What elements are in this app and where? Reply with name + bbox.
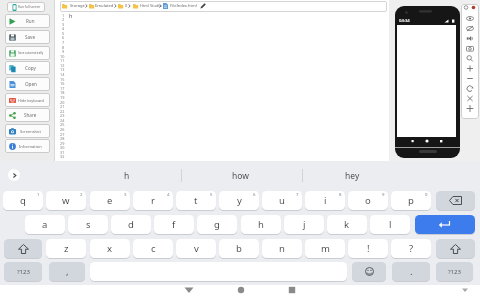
- button[interactable]: [8, 169, 20, 181]
- staticText: 31: [60, 150, 65, 155]
- button[interactable]: m: [305, 239, 345, 258]
- button[interactable]: Run: [5, 14, 50, 28]
- button[interactable]: [466, 85, 474, 92]
- button[interactable]: u: [262, 191, 302, 210]
- button[interactable]: n: [262, 239, 302, 258]
- button[interactable]: .: [392, 262, 430, 281]
- button[interactable]: g: [197, 215, 237, 234]
- button[interactable]: [4, 239, 42, 258]
- button[interactable]: Save: [5, 30, 50, 44]
- staticText: ?123: [448, 268, 461, 276]
- staticText: o: [365, 194, 371, 207]
- staticText: Information: [19, 144, 42, 149]
- button[interactable]: s: [68, 215, 108, 234]
- staticText: 29: [60, 141, 65, 146]
- staticText: 22: [60, 109, 65, 114]
- button[interactable]: [460, 287, 470, 294]
- button[interactable]: [466, 35, 474, 42]
- staticText: 32: [60, 154, 65, 159]
- button[interactable]: [415, 215, 475, 234]
- staticText: FileIndex.html: [170, 3, 197, 8]
- button[interactable]: v: [176, 239, 216, 258]
- staticText: .: [410, 265, 413, 278]
- button[interactable]: l: [370, 215, 410, 234]
- button[interactable]: [436, 191, 475, 210]
- button[interactable]: t: [176, 191, 216, 210]
- button[interactable]: h: [97, 163, 157, 189]
- button[interactable]: [60, 1, 387, 12]
- staticText: b: [236, 242, 242, 255]
- staticText: 16: [60, 81, 65, 86]
- button[interactable]: [466, 45, 474, 52]
- button[interactable]: [466, 65, 474, 72]
- button[interactable]: [466, 15, 474, 22]
- staticText: Storage: [70, 3, 85, 9]
- button[interactable]: p: [391, 191, 431, 210]
- button[interactable]: Screenshot: [5, 124, 50, 138]
- button[interactable]: a: [25, 215, 65, 234]
- button[interactable]: j: [284, 215, 324, 234]
- staticText: 04:34: [399, 18, 410, 24]
- button[interactable]: w: [46, 191, 86, 210]
- staticText: 11: [60, 58, 65, 63]
- button[interactable]: f: [154, 215, 194, 234]
- button[interactable]: [466, 25, 474, 32]
- button[interactable]: [436, 239, 475, 258]
- button[interactable]: hey: [322, 163, 382, 189]
- button[interactable]: [352, 262, 386, 281]
- button[interactable]: Share: [5, 108, 50, 122]
- button[interactable]: y: [219, 191, 259, 210]
- button[interactable]: ?123: [4, 262, 42, 281]
- button[interactable]: b: [219, 239, 259, 258]
- button[interactable]: [286, 286, 298, 294]
- button[interactable]: !: [348, 239, 388, 258]
- button[interactable]: Open: [5, 77, 50, 91]
- button[interactable]: Hide keyboard: [5, 93, 50, 107]
- staticText: y: [237, 194, 242, 207]
- button[interactable]: e: [90, 191, 130, 210]
- staticText: e: [107, 194, 113, 207]
- staticText: 10: [60, 54, 65, 59]
- button[interactable]: [463, 5, 477, 10]
- staticText: 7: [296, 191, 299, 197]
- staticText: 8: [339, 191, 342, 197]
- button[interactable]: k: [327, 215, 367, 234]
- staticText: ?123: [17, 268, 30, 276]
- button[interactable]: Save automatically: [5, 46, 50, 60]
- staticText: 1: [62, 13, 65, 18]
- button[interactable]: ?123: [436, 262, 473, 281]
- button[interactable]: d: [111, 215, 151, 234]
- button[interactable]: [466, 75, 474, 82]
- button[interactable]: Run full screen: [7, 2, 45, 12]
- button[interactable]: q: [3, 191, 43, 210]
- staticText: h: [69, 12, 73, 19]
- button[interactable]: ?: [391, 239, 431, 258]
- button[interactable]: [235, 286, 247, 294]
- button[interactable]: [466, 95, 474, 102]
- button[interactable]: [466, 105, 474, 112]
- staticText: s: [86, 218, 91, 231]
- staticText: Save automatically: [18, 51, 44, 55]
- staticText: 13: [60, 67, 65, 72]
- staticText: d: [128, 218, 134, 231]
- staticText: n: [279, 242, 285, 255]
- button[interactable]: x: [90, 239, 130, 258]
- button[interactable]: Copy: [5, 61, 50, 75]
- staticText: 28: [60, 136, 65, 141]
- button[interactable]: z: [46, 239, 86, 258]
- button[interactable]: how: [210, 163, 270, 189]
- button[interactable]: h: [241, 215, 281, 234]
- button[interactable]: Information: [5, 139, 50, 153]
- staticText: 27: [60, 132, 65, 137]
- button[interactable]: ,: [49, 262, 85, 281]
- button[interactable]: [183, 286, 195, 294]
- button[interactable]: c: [133, 239, 173, 258]
- staticText: how: [232, 170, 249, 182]
- staticText: 0: [125, 3, 128, 9]
- button[interactable]: o: [348, 191, 388, 210]
- button[interactable]: r: [133, 191, 173, 210]
- button[interactable]: i: [305, 191, 345, 210]
- button[interactable]: [466, 55, 474, 62]
- staticText: 15: [60, 77, 65, 82]
